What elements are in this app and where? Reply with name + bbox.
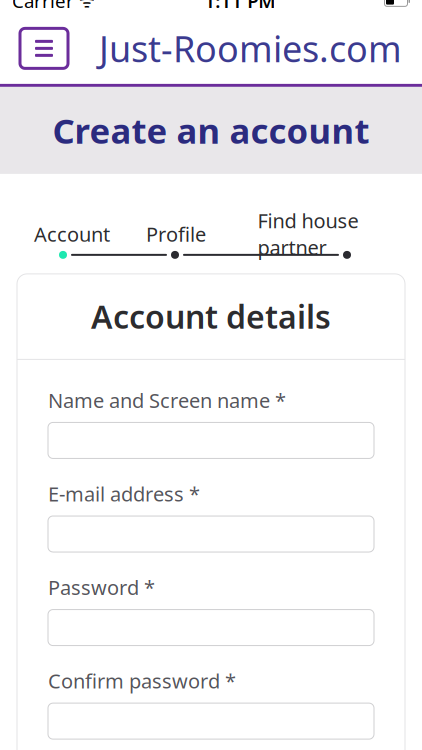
staticText: Create an account — [52, 107, 369, 153]
staticText: Name and Screen name * — [48, 387, 286, 413]
staticText: Account — [34, 221, 110, 247]
staticText: Just-Roomies.com — [99, 24, 402, 72]
button[interactable]: Menu — [20, 28, 68, 68]
staticText: Profile — [146, 221, 206, 247]
staticText: Carrier — [12, 0, 74, 13]
staticText: 1:11 PM — [204, 0, 275, 13]
staticText: Confirm password * — [48, 668, 236, 694]
staticText: Account details — [91, 295, 331, 338]
staticText: E-mail address * — [48, 480, 200, 507]
staticText: Find house partner — [257, 207, 358, 260]
staticText: ᯤ — [74, 0, 95, 12]
staticText: Password * — [48, 574, 155, 601]
